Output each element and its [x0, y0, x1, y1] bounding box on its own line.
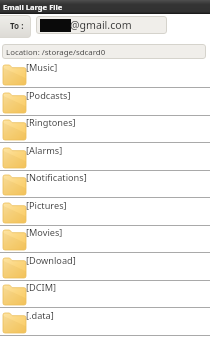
- button[interactable]: [Ringtones]: [0, 115, 210, 143]
- button[interactable]: [Alarms]: [0, 143, 210, 171]
- staticText: [Movies]: [26, 226, 63, 239]
- button[interactable]: [Music]: [0, 60, 210, 88]
- staticText: [Alarms]: [26, 144, 63, 157]
- staticText: [Pictures]: [26, 199, 67, 212]
- button[interactable]: Location: /storage/sdcard0: [2, 44, 206, 59]
- staticText: @gmail.com: [70, 18, 132, 32]
- button[interactable]: To :: [0, 15, 31, 38]
- button[interactable]: [Pictures]: [0, 198, 210, 226]
- staticText: Location: /storage/sdcard0: [6, 47, 106, 58]
- staticText: Email Large File: [3, 2, 63, 12]
- staticText: [Notifications]: [26, 171, 87, 184]
- button[interactable]: @gmail.com: [36, 16, 167, 34]
- button[interactable]: [.data]: [0, 308, 210, 336]
- staticText: [Music]: [26, 61, 58, 74]
- staticText: [Podcasts]: [26, 89, 71, 102]
- staticText: [Ringtones]: [26, 116, 76, 129]
- button[interactable]: [Download]: [0, 253, 210, 281]
- staticText: [.data]: [26, 309, 54, 322]
- button[interactable]: [Notifications]: [0, 170, 210, 198]
- button[interactable]: [DCIM]: [0, 280, 210, 308]
- button[interactable]: [Podcasts]: [0, 88, 210, 116]
- staticText: [Download]: [26, 254, 76, 267]
- staticText: To :: [10, 20, 24, 31]
- staticText: [DCIM]: [26, 281, 57, 294]
- button[interactable]: [Movies]: [0, 225, 210, 253]
